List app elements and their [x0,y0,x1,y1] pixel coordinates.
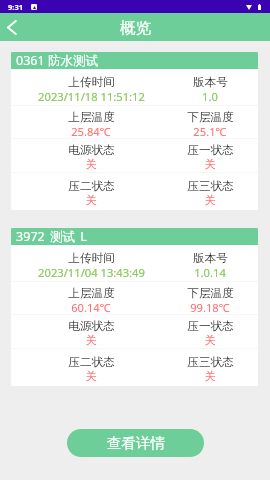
staticText: 版本号 [193,75,228,89]
staticText: 下层温度 [187,110,234,124]
staticText: 9:31 [8,2,23,12]
staticText: 压一状态 [187,143,234,157]
staticText: 压一状态 [187,319,234,333]
staticText: 关 [85,333,97,347]
staticText: 电源状态 [68,319,115,333]
staticText: 关 [85,369,97,383]
staticText: 上传时间 [68,75,115,89]
staticText: 2023/11/04 13:43:49 [38,265,145,279]
staticText: 关 [204,157,216,171]
button[interactable]: Back [0,13,24,41]
staticText: 60.14℃ [71,300,111,314]
staticText: 关 [204,333,216,347]
staticText: 电源状态 [68,143,115,157]
staticText: 上层温度 [68,110,115,124]
staticText: 概览 [120,18,151,37]
button[interactable]: 0361 防水测试 [11,52,258,210]
staticText: 上传时间 [68,251,115,265]
button[interactable]: 查看详情 [67,429,204,457]
button[interactable]: 3972 测试 L [11,228,258,386]
staticText: 99.18℃ [190,300,230,314]
staticText: 0361 防水测试 [16,52,98,69]
staticText: 3972 测试 L [16,228,87,245]
staticText: 关 [204,369,216,383]
staticText: 25.84℃ [71,124,111,138]
staticText: 版本号 [193,251,228,265]
staticText: 关 [85,193,97,207]
staticText: 1.0.14 [194,265,226,279]
staticText: 25.1℃ [193,124,227,138]
staticText: 下层温度 [187,286,234,300]
staticText: 关 [85,157,97,171]
staticText: 关 [204,193,216,207]
staticText: 查看详情 [107,434,165,452]
staticText: 上层温度 [68,286,115,300]
staticText: 2023/11/18 11:51:12 [38,89,145,103]
staticText: 压二状态 [68,179,115,193]
staticText: 1.0 [202,89,218,103]
staticText: 压三状态 [187,179,234,193]
staticText: 压二状态 [68,355,115,369]
staticText: 压三状态 [187,355,234,369]
